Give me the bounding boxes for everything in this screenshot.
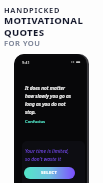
staticText: Your time is limited, so don't waste it (25, 148, 69, 163)
staticText: SELECT (41, 170, 58, 176)
staticText: It does not matter how slowly you go as … (25, 85, 71, 116)
button[interactable]: SELECT (24, 167, 75, 179)
staticText: Confucius (25, 119, 46, 125)
staticText: FOR YOU (4, 38, 41, 48)
staticText: HANDPICKED (4, 5, 61, 15)
staticText: MOTIVATIONAL (4, 14, 84, 27)
staticText: QUOTES (4, 26, 45, 39)
staticText: 9:41 (22, 60, 30, 65)
